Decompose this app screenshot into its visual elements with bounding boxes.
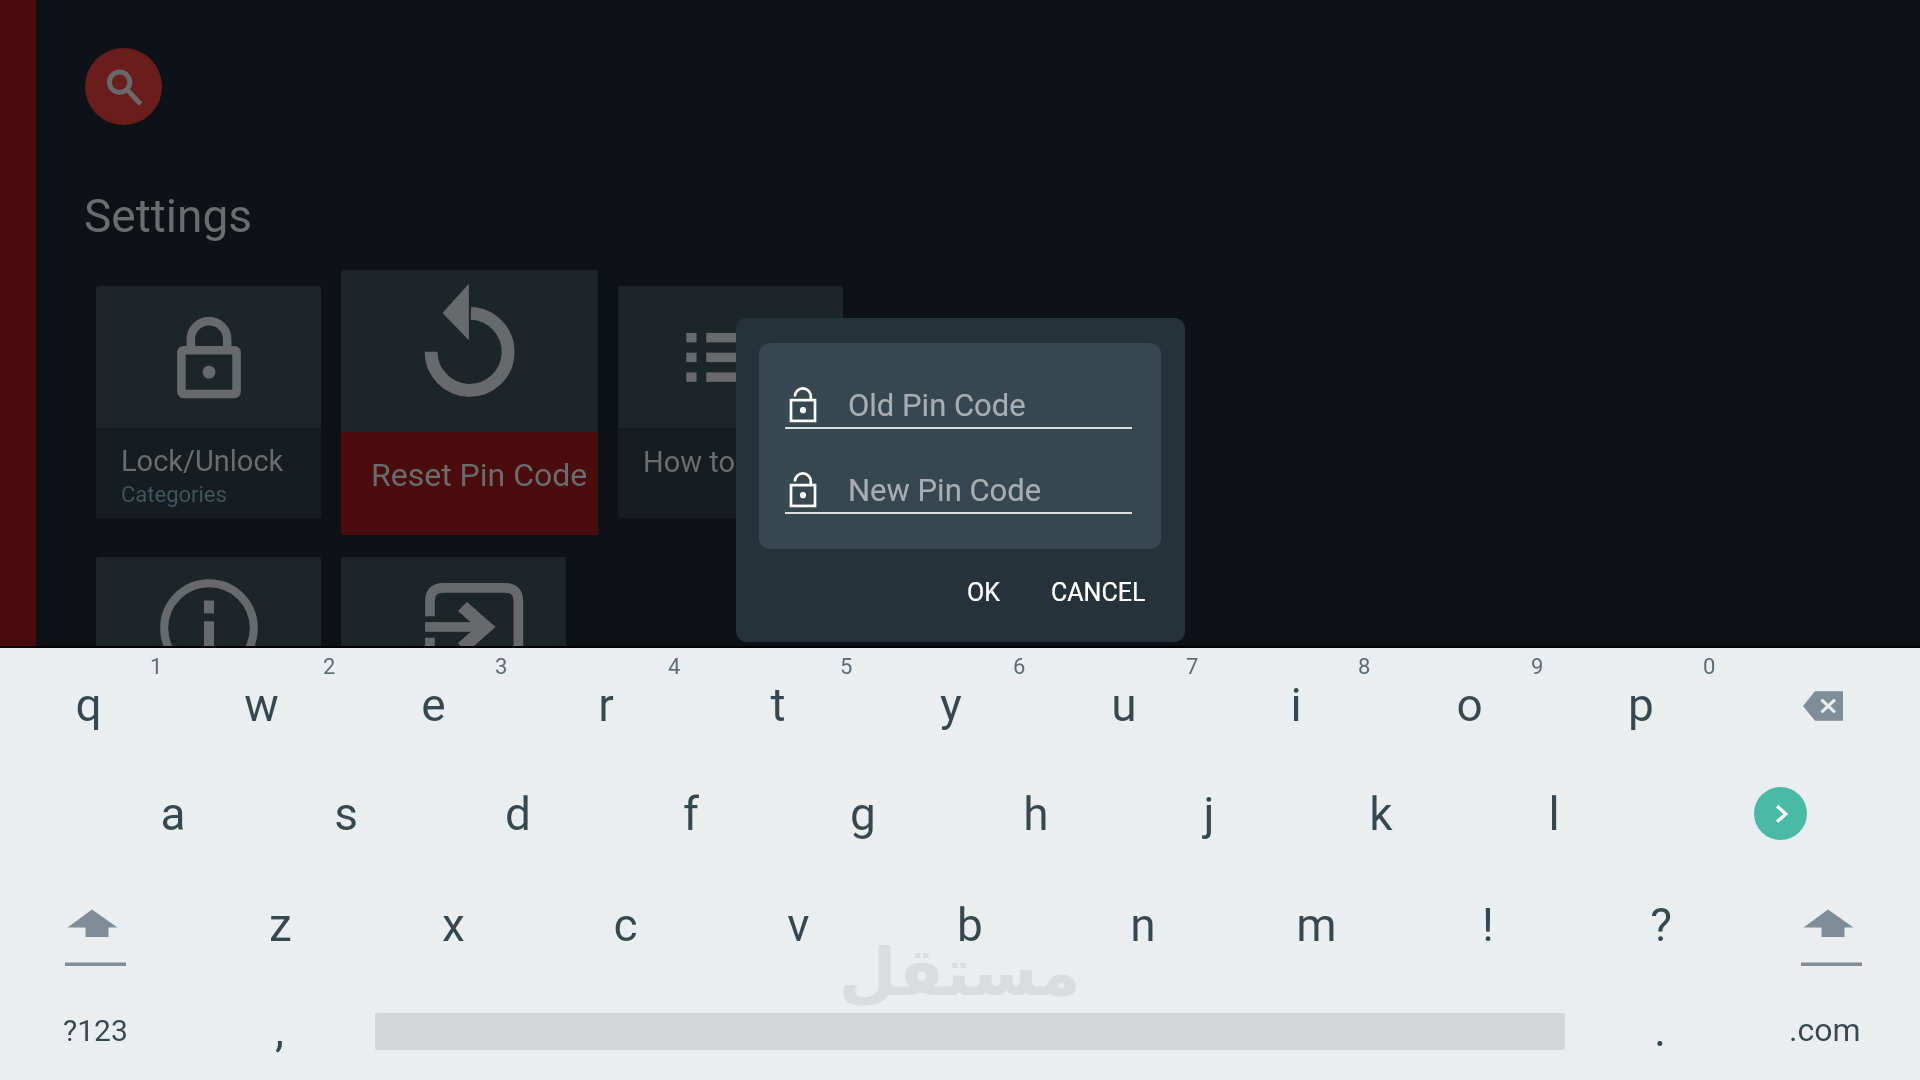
staticText: Lock/Unlock <box>121 444 284 478</box>
button[interactable]: , <box>225 986 335 1074</box>
staticText: z <box>269 898 292 952</box>
button[interactable]: g <box>777 760 949 868</box>
staticText: ? <box>1650 898 1672 952</box>
button[interactable]: m <box>1230 871 1402 979</box>
staticText: f <box>683 787 699 841</box>
staticText: d <box>505 787 531 841</box>
staticText: m <box>1296 898 1337 952</box>
staticText: k <box>1369 787 1393 841</box>
button[interactable]: Shift <box>1768 885 1896 985</box>
staticText: s <box>334 787 358 841</box>
button[interactable]: 4 <box>520 651 692 759</box>
button[interactable]: OK <box>949 569 1018 616</box>
button[interactable]: 3 <box>347 651 519 759</box>
staticText: 0 <box>1703 654 1716 680</box>
staticText: . <box>1654 1003 1667 1057</box>
button[interactable]: Search <box>85 48 162 125</box>
staticText: l <box>1548 787 1560 841</box>
staticText: p <box>1628 678 1654 732</box>
button[interactable]: New Pin Code <box>785 461 1132 517</box>
staticText: 5 <box>840 654 853 680</box>
staticText: j <box>1203 787 1215 841</box>
button[interactable]: 6 <box>865 651 1037 759</box>
staticText: y <box>940 678 962 732</box>
button[interactable]: h <box>950 760 1122 868</box>
staticText: OK <box>967 578 1000 607</box>
staticText: u <box>1111 678 1137 732</box>
button[interactable]: j <box>1123 760 1295 868</box>
staticText: New Pin Code <box>848 472 1042 508</box>
staticText: 6 <box>1013 654 1026 680</box>
staticText: r <box>598 678 614 732</box>
staticText: How to <box>643 445 735 479</box>
button[interactable]: .com <box>1755 986 1895 1074</box>
staticText: 8 <box>1358 654 1371 680</box>
button[interactable]: Lock/Unlock <box>96 286 321 518</box>
button[interactable]: How to <box>618 286 843 518</box>
button[interactable]: f <box>605 760 777 868</box>
button[interactable]: l <box>1468 760 1640 868</box>
staticText: Settings <box>84 189 252 243</box>
staticText: 7 <box>1186 654 1199 680</box>
staticText: i <box>1290 678 1302 732</box>
button[interactable]: Old Pin Code <box>785 376 1132 432</box>
staticText: v <box>787 898 810 952</box>
staticText: a <box>160 787 186 841</box>
staticText: e <box>421 678 446 732</box>
button[interactable]: v <box>712 871 884 979</box>
staticText: 3 <box>495 654 508 680</box>
button[interactable]: 1 <box>2 651 174 759</box>
button[interactable]: d <box>432 760 604 868</box>
button[interactable]: ?123 <box>20 986 170 1074</box>
staticText: c <box>613 898 638 952</box>
button[interactable]: Backspace <box>1758 652 1888 760</box>
staticText: ! <box>1482 898 1494 952</box>
button[interactable]: . <box>1610 986 1710 1074</box>
staticText: n <box>1130 898 1156 952</box>
staticText: g <box>850 787 876 841</box>
staticText: Categories <box>121 482 227 508</box>
button[interactable]: CANCEL <box>1033 569 1164 616</box>
staticText: 4 <box>668 654 681 680</box>
button[interactable]: c <box>539 871 711 979</box>
button[interactable]: ? <box>1575 871 1747 979</box>
staticText: h <box>1023 787 1049 841</box>
staticText: q <box>75 678 102 732</box>
button[interactable]: k <box>1295 760 1467 868</box>
staticText: ?123 <box>63 1013 128 1048</box>
staticText: , <box>275 1003 285 1057</box>
button[interactable]: x <box>367 871 539 979</box>
button[interactable]: ! <box>1402 871 1574 979</box>
button[interactable]: 7 <box>1038 651 1210 759</box>
button[interactable]: 5 <box>692 651 864 759</box>
staticText: 9 <box>1531 654 1544 680</box>
button[interactable]: Reset Pin Code <box>341 270 598 535</box>
button[interactable]: a <box>87 760 259 868</box>
staticText: b <box>957 898 983 952</box>
button[interactable]: 9 <box>1383 651 1555 759</box>
button[interactable]: 2 <box>175 651 347 759</box>
button[interactable]: s <box>260 760 432 868</box>
staticText: .com <box>1789 1011 1861 1049</box>
staticText: مستقل <box>839 934 1081 1011</box>
button[interactable]: About <box>96 557 321 789</box>
staticText: CANCEL <box>1051 578 1146 607</box>
button[interactable]: Enter <box>1754 787 1807 840</box>
staticText: 2 <box>323 654 336 680</box>
button[interactable]: Shift <box>32 885 160 985</box>
button[interactable]: Exit <box>341 557 566 789</box>
button[interactable]: n <box>1057 871 1229 979</box>
staticText: Reset Pin Code <box>371 456 588 494</box>
staticText: o <box>1456 678 1483 732</box>
staticText: x <box>442 898 465 952</box>
button[interactable]: b <box>884 871 1056 979</box>
staticText: t <box>770 678 786 732</box>
button[interactable]: z <box>194 871 366 979</box>
button[interactable]: 8 <box>1210 651 1382 759</box>
staticText: Old Pin Code <box>848 387 1026 423</box>
staticText: 1 <box>150 654 163 680</box>
button[interactable]: 0 <box>1555 651 1727 759</box>
